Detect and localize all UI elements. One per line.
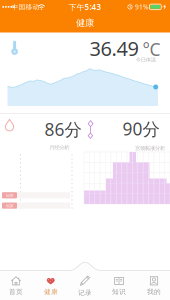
button[interactable]: 我的	[138, 272, 170, 298]
staticText: °C	[142, 38, 160, 61]
staticText: 健康	[44, 288, 58, 296]
staticText: 健康	[76, 17, 94, 29]
staticText: 首页	[9, 288, 23, 296]
staticText: 36.49	[89, 35, 138, 61]
staticText: 下午5:43	[68, 2, 101, 12]
button[interactable]: 知识	[103, 272, 135, 298]
staticText: 知识	[112, 288, 126, 296]
staticText: 月经分析	[49, 144, 69, 151]
staticText: 6/28	[6, 193, 13, 198]
staticText: 记录	[78, 289, 92, 297]
staticText: 6/28	[6, 203, 13, 208]
button[interactable]: 6/28	[2, 192, 17, 198]
staticText: 86分	[44, 118, 81, 141]
staticText: 宫颈黏液分析	[135, 145, 165, 151]
button[interactable]: 首页	[0, 272, 32, 298]
staticText: 中国移动	[11, 3, 39, 11]
button[interactable]: 记录	[69, 272, 101, 298]
staticText: 我的	[147, 288, 161, 296]
staticText: 今日体温	[136, 56, 156, 63]
staticText: 90分	[122, 117, 159, 140]
staticText: 91%	[135, 3, 149, 11]
button[interactable]: 健康	[35, 272, 67, 298]
button[interactable]: 6/28	[2, 202, 17, 209]
